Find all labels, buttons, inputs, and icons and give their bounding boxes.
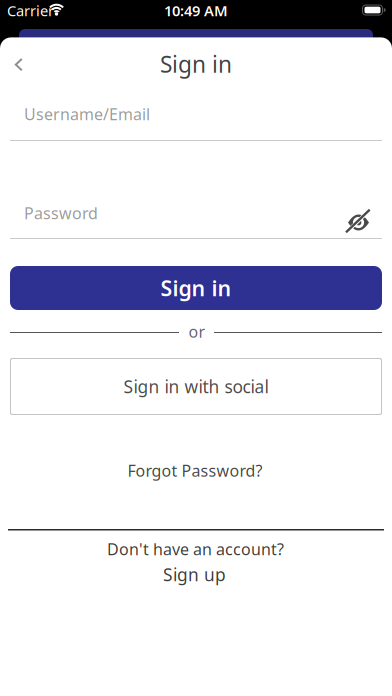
staticText: 10:49 AM bbox=[164, 1, 228, 20]
staticText: Sign in bbox=[160, 49, 232, 79]
staticText: Sign in with social bbox=[123, 375, 268, 398]
button[interactable]: Show password bbox=[336, 201, 380, 241]
button[interactable]: Back bbox=[2, 46, 36, 82]
button[interactable]: Sign in with social bbox=[10, 358, 382, 415]
staticText: Forgot Password? bbox=[127, 460, 262, 481]
button[interactable]: Sign in bbox=[10, 266, 382, 310]
staticText: Sign up bbox=[163, 563, 226, 586]
staticText: or bbox=[188, 321, 205, 342]
staticText: Password bbox=[24, 202, 98, 224]
staticText: Don't have an account? bbox=[107, 538, 284, 560]
staticText: Carrier bbox=[7, 1, 54, 20]
button[interactable]: Forgot Password? bbox=[127, 460, 262, 481]
button[interactable]: Sign up bbox=[163, 563, 226, 586]
staticText: Username/Email bbox=[24, 103, 150, 125]
staticText: Sign in bbox=[160, 274, 231, 302]
